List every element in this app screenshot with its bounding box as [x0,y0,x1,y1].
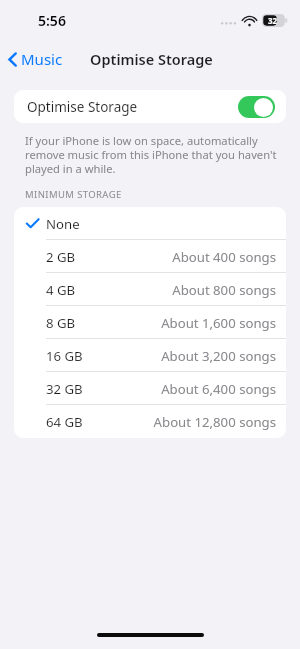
button[interactable]: 4 GB [14,273,286,306]
button[interactable]: 64 GB [14,405,286,438]
staticText: About 3,200 songs [161,347,276,365]
staticText: Music [21,49,63,69]
staticText: 32 GB [46,380,83,398]
button[interactable]: 2 GB [14,240,286,273]
staticText: None [46,215,80,233]
staticText: Optimise Storage [27,98,138,116]
staticText: 8 GB [46,314,76,332]
staticText: 2 GB [46,248,76,266]
staticText: 32 [268,15,278,26]
button[interactable]: None [14,207,286,240]
staticText: About 6,400 songs [161,380,276,398]
staticText: About 1,600 songs [161,314,276,332]
staticText: MINIMUM STORAGE [25,188,122,201]
staticText: If your iPhone is low on space, automati… [25,133,278,176]
button[interactable]: 8 GB [14,306,286,339]
button[interactable]: 32 GB [14,372,286,405]
staticText: Optimise Storage [90,49,213,69]
staticText: 16 GB [46,347,83,365]
button[interactable]: Music [0,45,69,73]
button[interactable]: Optimise Storage toggle, on [238,96,275,118]
staticText: 64 GB [46,413,83,431]
staticText: 4 GB [46,281,76,299]
staticText: 5:56 [38,11,66,30]
staticText: About 800 songs [172,281,276,299]
staticText: About 12,800 songs [153,413,276,431]
button[interactable]: 16 GB [14,339,286,372]
button[interactable]: Optimise Storage [14,90,286,123]
staticText: About 400 songs [172,248,276,266]
